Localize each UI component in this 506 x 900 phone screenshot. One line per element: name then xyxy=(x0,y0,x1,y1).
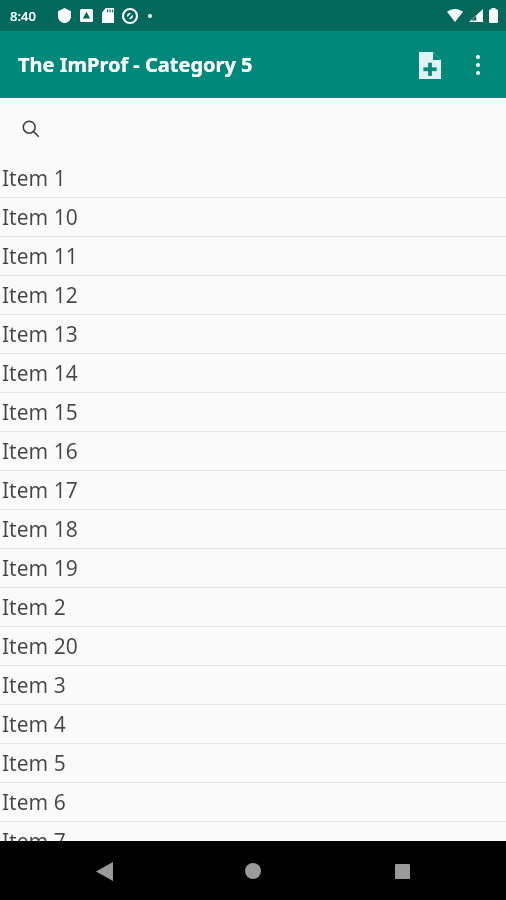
staticText: Item 15 xyxy=(2,398,78,427)
staticText: Item 3 xyxy=(2,671,66,700)
button[interactable]: More options xyxy=(454,41,502,89)
button[interactable]: Item 1 xyxy=(0,159,506,198)
button[interactable]: Item 19 xyxy=(0,549,506,588)
button[interactable]: Item 14 xyxy=(0,354,506,393)
button[interactable]: Item 3 xyxy=(0,666,506,705)
button[interactable]: Search xyxy=(0,98,506,159)
staticText: Item 13 xyxy=(2,320,78,349)
button[interactable]: Item 13 xyxy=(0,315,506,354)
staticText: Item 4 xyxy=(2,710,66,739)
button[interactable]: Recent apps xyxy=(376,845,428,897)
button[interactable]: Item 4 xyxy=(0,705,506,744)
button[interactable]: Item 5 xyxy=(0,744,506,783)
button[interactable]: Item 18 xyxy=(0,510,506,549)
staticText: Item 12 xyxy=(2,281,78,310)
staticText: Item 7 xyxy=(2,827,66,841)
button[interactable]: Home xyxy=(227,845,279,897)
staticText: Item 17 xyxy=(2,476,78,505)
button[interactable]: Add item xyxy=(406,41,454,89)
button[interactable]: Back xyxy=(78,845,130,897)
staticText: Item 10 xyxy=(2,203,78,232)
button[interactable]: Item 11 xyxy=(0,237,506,276)
button[interactable]: Item 7 xyxy=(0,822,506,841)
staticText: Item 16 xyxy=(2,437,78,466)
button[interactable]: Item 15 xyxy=(0,393,506,432)
staticText: Item 1 xyxy=(2,164,66,193)
staticText: Item 14 xyxy=(2,359,78,388)
staticText: 8:40 xyxy=(10,7,36,25)
staticText: Item 11 xyxy=(2,242,78,271)
button[interactable]: Item 17 xyxy=(0,471,506,510)
staticText: Item 6 xyxy=(2,788,66,817)
button[interactable]: Item 6 xyxy=(0,783,506,822)
staticText: Item 20 xyxy=(2,632,78,661)
button[interactable]: Item 12 xyxy=(0,276,506,315)
staticText: Item 5 xyxy=(2,749,66,778)
staticText: Item 19 xyxy=(2,554,78,583)
button[interactable]: Item 16 xyxy=(0,432,506,471)
staticText: Item 2 xyxy=(2,593,66,622)
button[interactable]: Item 20 xyxy=(0,627,506,666)
button[interactable]: Item 2 xyxy=(0,588,506,627)
button[interactable]: Item 10 xyxy=(0,198,506,237)
staticText: The ImProf - Category 5 xyxy=(18,51,253,78)
staticText: Item 18 xyxy=(2,515,78,544)
